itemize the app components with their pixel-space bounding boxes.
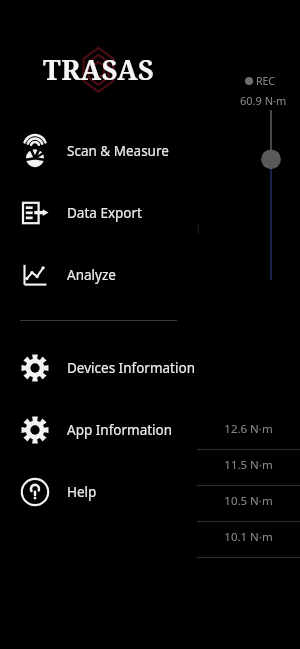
staticText: Scan & Measure [67, 142, 169, 160]
button[interactable]: 10.1 N·m [197, 522, 300, 558]
staticText: 12.6 N·m [224, 421, 273, 437]
staticText: Analyze [67, 266, 116, 284]
button[interactable]: 11.5 N·m [197, 450, 300, 486]
button[interactable]: Scan & Measure [0, 120, 197, 182]
staticText: 1 [194, 219, 203, 238]
staticText: REC [256, 74, 276, 88]
staticText: 10.1 N·m [224, 529, 273, 545]
staticText: TRASAS [43, 51, 155, 88]
staticText: 60.9 N·m [240, 93, 287, 108]
button[interactable]: 10.5 N·m [197, 486, 300, 522]
button[interactable]: App Information [0, 399, 197, 461]
staticText: 11.5 N·m [224, 457, 273, 473]
staticText: App Information [67, 421, 173, 439]
staticText: Help [67, 483, 97, 501]
button[interactable]: Analyze [0, 244, 197, 306]
button[interactable]: Data Export [0, 182, 197, 244]
button[interactable]: 12.6 N·m [197, 414, 300, 450]
button[interactable]: Help [0, 461, 197, 523]
staticText: Data Export [67, 204, 142, 222]
staticText: 10.5 N·m [224, 493, 273, 509]
staticText: Devices Information [67, 359, 195, 377]
button[interactable]: Devices Information [0, 337, 197, 399]
